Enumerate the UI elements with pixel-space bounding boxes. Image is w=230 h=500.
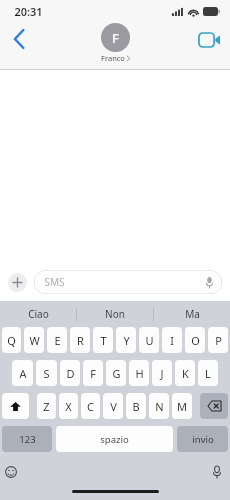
staticText: S (43, 366, 50, 381)
staticText: U (145, 333, 154, 348)
staticText: I (170, 333, 174, 348)
staticText: Z (43, 399, 50, 414)
button[interactable]: Dictation (208, 463, 226, 481)
button[interactable]: F (101, 23, 130, 63)
button[interactable]: Backspace (200, 393, 228, 419)
button[interactable]: Y (116, 327, 136, 353)
staticText: SMS (44, 275, 65, 289)
button[interactable]: SMS (34, 270, 222, 294)
button[interactable]: Ma (154, 301, 230, 327)
staticText: 123 (19, 433, 36, 446)
staticText: Ma (185, 307, 200, 321)
staticText: O (191, 333, 200, 348)
staticText: G (112, 366, 121, 381)
staticText: invio (192, 433, 214, 446)
button[interactable]: Q (2, 327, 21, 353)
button[interactable]: A (12, 360, 33, 386)
button[interactable]: P (208, 327, 228, 353)
button[interactable]: Ciao (0, 301, 76, 327)
button[interactable]: K (175, 360, 195, 386)
button[interactable]: X (59, 393, 78, 419)
staticText: N (155, 399, 164, 414)
button[interactable]: Z (37, 393, 56, 419)
staticText: Ciao (28, 307, 49, 321)
button[interactable]: 123 (2, 426, 52, 452)
button[interactable]: H (129, 360, 149, 386)
button[interactable]: Emoji (2, 463, 20, 481)
staticText: P (215, 333, 222, 348)
button[interactable]: B (126, 393, 146, 419)
staticText: 20:31 (14, 4, 43, 19)
button[interactable]: L (198, 360, 218, 386)
other: Dictate (203, 276, 215, 288)
staticText: H (135, 366, 144, 381)
button[interactable]: Shift (2, 393, 29, 419)
button[interactable]: FaceTime video call (194, 25, 224, 55)
staticText: spazio (100, 433, 129, 446)
button[interactable]: S (36, 360, 57, 386)
button[interactable]: W (24, 327, 44, 353)
button[interactable]: O (185, 327, 205, 353)
button[interactable]: T (93, 327, 113, 353)
button[interactable]: U (139, 327, 159, 353)
staticText: J (160, 366, 164, 381)
staticText: F (112, 29, 119, 47)
button[interactable]: Add attachment (8, 273, 27, 292)
staticText: B (132, 399, 140, 414)
staticText: T (100, 333, 107, 348)
button[interactable]: D (60, 360, 80, 386)
staticText: Franco (101, 53, 125, 63)
button[interactable]: J (152, 360, 172, 386)
button[interactable]: V (103, 393, 123, 419)
staticText: Y (123, 333, 130, 348)
staticText: A (19, 366, 27, 381)
button[interactable]: R (70, 327, 90, 353)
staticText: V (110, 399, 117, 414)
button[interactable]: F (83, 360, 103, 386)
staticText: Non (105, 307, 125, 321)
button[interactable]: M (172, 393, 192, 419)
staticText: L (205, 366, 211, 381)
button[interactable]: E (47, 327, 67, 353)
staticText: F (90, 366, 96, 381)
staticText: X (65, 399, 72, 414)
button[interactable]: N (149, 393, 169, 419)
button[interactable]: Non (77, 301, 153, 327)
button[interactable]: Back (4, 24, 34, 54)
staticText: W (29, 333, 40, 348)
button[interactable]: spazio (56, 426, 173, 452)
staticText: R (77, 333, 84, 348)
staticText: E (54, 333, 61, 348)
button[interactable]: I (162, 327, 182, 353)
button[interactable]: C (81, 393, 100, 419)
staticText: C (87, 399, 94, 414)
button[interactable]: invio (177, 426, 228, 452)
staticText: D (66, 366, 75, 381)
staticText: K (182, 366, 189, 381)
button[interactable]: G (106, 360, 126, 386)
staticText: M (177, 399, 187, 414)
staticText: Q (7, 333, 16, 348)
